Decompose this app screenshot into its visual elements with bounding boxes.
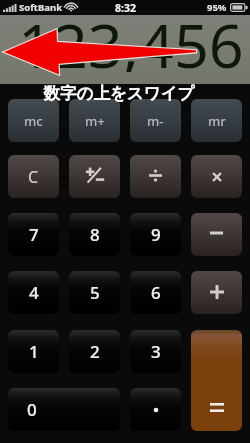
button[interactable]: 1 [8,330,59,373]
staticText: 123,456 [18,3,244,72]
staticText: 7 [29,223,39,246]
button[interactable]: 0 [8,388,120,431]
button[interactable]: 9 [130,213,181,256]
staticText: SoftBank [19,1,63,14]
staticText: 6 [151,281,161,304]
button[interactable]: equals [191,330,242,431]
button[interactable]: 7 [8,213,59,256]
button[interactable]: plus [191,271,242,314]
button[interactable]: 5 [69,271,120,314]
button[interactable]: m+ [69,99,120,142]
staticText: 3 [151,340,161,363]
staticText: 4 [29,281,39,304]
button[interactable]: m- [130,99,181,142]
staticText: 1 [29,340,39,363]
staticText: 9 [151,223,161,246]
staticText: 5 [90,281,100,304]
button[interactable]: minus [191,213,242,256]
staticText: mc [24,112,43,130]
button[interactable]: 8 [69,213,120,256]
staticText: C [28,166,39,188]
button[interactable]: decimal point [130,388,181,431]
button[interactable]: mr [191,99,242,142]
button[interactable]: 3 [130,330,181,373]
staticText: 95% [207,1,227,14]
staticText: 0 [27,398,37,421]
staticText: mr [208,112,226,130]
staticText: m- [147,112,164,130]
staticText: 数字の上をスワイプ [0,83,244,104]
button[interactable]: C [8,155,59,198]
staticText: 8 [90,223,100,246]
staticText: 2 [90,340,100,363]
staticText: m+ [85,112,105,130]
button[interactable]: divide [130,155,181,198]
button[interactable]: 4 [8,271,59,314]
button[interactable]: 6 [130,271,181,314]
button[interactable]: mc [8,99,59,142]
button[interactable]: plus minus [69,155,120,198]
button[interactable]: multiply [191,155,242,198]
button[interactable]: 2 [69,330,120,373]
staticText: 8:32 [115,1,136,15]
